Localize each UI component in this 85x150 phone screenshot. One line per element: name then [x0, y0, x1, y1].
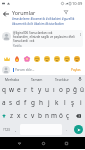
- button[interactable]: Back: [14, 138, 24, 148]
- staticText: f: [24, 98, 27, 107]
- staticText: Yanitla: [13, 44, 22, 47]
- staticText: hoslandim, elinizde saglik ve paylasim c…: [13, 35, 75, 39]
- button[interactable]: Backspace: [71, 109, 85, 122]
- button[interactable]: Home: [38, 138, 48, 148]
- button[interactable]: Recents: [61, 138, 71, 148]
- button[interactable]: Filter: [62, 8, 70, 16]
- button[interactable]: ö: [57, 109, 64, 122]
- button[interactable]: q: [0, 83, 8, 96]
- button[interactable]: Tamam: [24, 75, 49, 83]
- staticText: Tamam: [31, 77, 43, 81]
- button[interactable]: h: [37, 96, 45, 109]
- button[interactable]: n: [43, 109, 50, 122]
- staticText: ş: [71, 98, 75, 107]
- staticText: ı: [53, 85, 55, 94]
- staticText: Tesekkur: [55, 77, 69, 81]
- button[interactable]: Voice input: [74, 75, 85, 83]
- staticText: ,: [15, 127, 17, 133]
- button[interactable]: v: [29, 109, 36, 122]
- staticText: m: [51, 111, 57, 120]
- button[interactable]: c: [22, 109, 29, 122]
- button[interactable]: Tesekkur: [49, 75, 74, 83]
- button[interactable]: f: [21, 96, 29, 109]
- staticText: l: [64, 98, 66, 107]
- button[interactable]: t: [29, 83, 36, 96]
- button[interactable]: j: [45, 96, 53, 109]
- button[interactable]: p: [64, 83, 71, 96]
- button[interactable]: ş: [69, 96, 77, 109]
- button[interactable]: e: [15, 83, 22, 96]
- staticText: u: [45, 85, 49, 94]
- staticText: j: [48, 98, 50, 107]
- staticText: ç: [66, 111, 70, 120]
- staticText: ?123: [3, 128, 10, 132]
- button[interactable]: o: [57, 83, 64, 96]
- button[interactable]: y: [36, 83, 43, 96]
- button[interactable]: Emoji reaction: [52, 54, 62, 64]
- button[interactable]: l: [61, 96, 69, 109]
- staticText: q: [2, 85, 6, 94]
- button[interactable]: Paylas: [69, 66, 83, 74]
- staticText: o: [59, 85, 63, 94]
- staticText: ğ: [73, 85, 77, 94]
- button[interactable]: s: [7, 96, 14, 109]
- button[interactable]: g: [29, 96, 37, 109]
- button[interactable]: w: [8, 83, 15, 96]
- button[interactable]: Send: [71, 124, 85, 135]
- button[interactable]: ç: [64, 109, 71, 122]
- staticText: t: [31, 85, 34, 94]
- button[interactable]: Shift: [0, 109, 8, 122]
- button[interactable]: x: [15, 109, 22, 122]
- staticText: d: [16, 98, 20, 107]
- staticText: y: [38, 85, 42, 94]
- button[interactable]: Back: [0, 8, 12, 20]
- staticText: k: [55, 98, 59, 107]
- button[interactable]: Emoji reaction: [2, 54, 12, 64]
- button[interactable]: z: [8, 109, 15, 122]
- button[interactable]: u: [43, 83, 50, 96]
- button[interactable]: ?123: [0, 124, 13, 135]
- staticText: ö: [59, 111, 63, 120]
- button[interactable]: Emoji reaction: [72, 54, 82, 64]
- button[interactable]: ı: [50, 83, 57, 96]
- staticText: z: [10, 111, 14, 120]
- button[interactable]: ü: [78, 83, 85, 96]
- staticText: Yorum ekle...: [15, 68, 35, 72]
- button[interactable]: Emoji reaction: [12, 54, 22, 64]
- button[interactable]: b: [36, 109, 43, 122]
- staticText: a: [2, 98, 6, 107]
- button[interactable]: Emoji reaction: [22, 54, 32, 64]
- staticText: c: [24, 111, 28, 120]
- staticText: p: [66, 85, 70, 94]
- button[interactable]: Emoji reaction: [62, 54, 72, 64]
- staticText: b: [38, 111, 42, 120]
- button[interactable]: r: [22, 83, 29, 96]
- button[interactable]: Emoji reaction: [42, 54, 52, 64]
- staticText: r: [24, 85, 27, 94]
- button[interactable]: @ilginc006 Sonuclardan cok: [12, 30, 83, 47]
- staticText: g: [31, 98, 35, 107]
- staticText: s: [9, 98, 13, 107]
- button[interactable]: ,: [13, 124, 19, 135]
- staticText: x: [17, 111, 21, 120]
- staticText: .: [66, 127, 68, 133]
- staticText: v: [31, 111, 35, 120]
- button[interactable]: d: [14, 96, 21, 109]
- staticText: Sonuclardi cok: [13, 39, 35, 43]
- staticText: w: [9, 85, 15, 94]
- button[interactable]: ğ: [71, 83, 78, 96]
- button[interactable]: Merhaba: [0, 75, 24, 83]
- button[interactable]: a: [0, 96, 7, 109]
- staticText: Paylas: [71, 68, 81, 72]
- staticText: h: [39, 98, 43, 107]
- staticText: ü: [80, 85, 84, 94]
- button[interactable]: More options: [78, 32, 82, 36]
- staticText: Merhaba: [5, 77, 19, 81]
- staticText: Yorumlar: [12, 9, 36, 16]
- button[interactable]: Emoji reaction: [32, 54, 42, 64]
- button[interactable]: k: [53, 96, 61, 109]
- button[interactable]: m: [50, 109, 57, 122]
- button[interactable]: i: [77, 96, 85, 109]
